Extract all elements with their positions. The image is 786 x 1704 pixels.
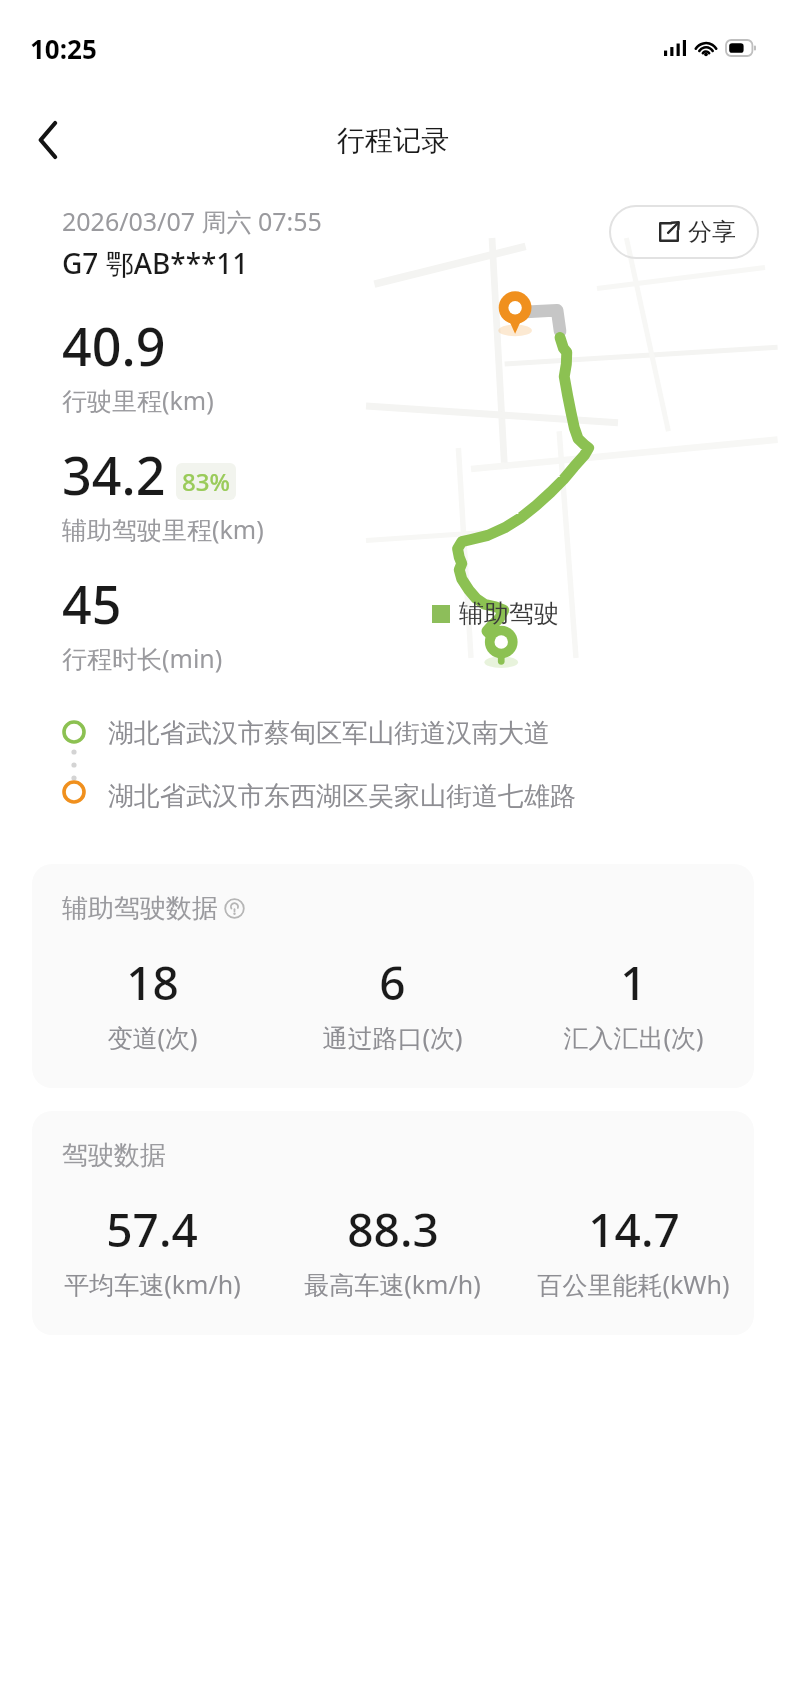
staticText: 45 [62, 568, 122, 639]
staticText: 百公里能耗(kWh) [537, 1267, 730, 1301]
staticText: 6 [379, 951, 406, 1014]
staticText: 10:25 [30, 31, 97, 66]
button[interactable]: Back [20, 111, 78, 169]
staticText: 辅助驾驶 [459, 598, 559, 629]
staticText: 57.4 [106, 1198, 198, 1261]
button[interactable]: 分享 [636, 206, 758, 258]
staticText: 88.3 [347, 1198, 439, 1261]
button[interactable]: 辅助驾驶数据 [32, 864, 754, 1088]
staticText: 14.7 [588, 1198, 680, 1261]
staticText: 驾驶数据 [62, 1139, 166, 1172]
staticText: 18 [126, 951, 179, 1014]
staticText: 34.2 [62, 439, 166, 510]
staticText: 辅助驾驶里程(km) [62, 512, 264, 546]
staticText: 行程时长(min) [62, 641, 223, 675]
staticText: 汇入汇出(次) [563, 1020, 704, 1054]
staticText: 辅助驾驶数据 [62, 892, 218, 925]
staticText: 变道(次) [107, 1020, 198, 1054]
staticText: 行程记录 [337, 123, 449, 158]
staticText: 40.9 [62, 310, 166, 381]
staticText: 湖北省武汉市东西湖区吴家山街道七雄路 [108, 780, 576, 813]
staticText: 湖北省武汉市蔡甸区军山街道汉南大道 [108, 717, 550, 750]
staticText: 2026/03/07 周六 07:55 [62, 204, 322, 238]
staticText: 通过路口(次) [322, 1020, 463, 1054]
staticText: 分享 [688, 217, 736, 247]
staticText: 最高车速(km/h) [304, 1267, 481, 1301]
button[interactable]: 驾驶数据 [32, 1111, 754, 1335]
staticText: 平均车速(km/h) [64, 1267, 241, 1301]
staticText: G7 鄂AB***11 [62, 244, 249, 282]
staticText: 行驶里程(km) [62, 383, 214, 417]
staticText: 1 [620, 951, 647, 1014]
staticText: 83% [182, 465, 230, 498]
